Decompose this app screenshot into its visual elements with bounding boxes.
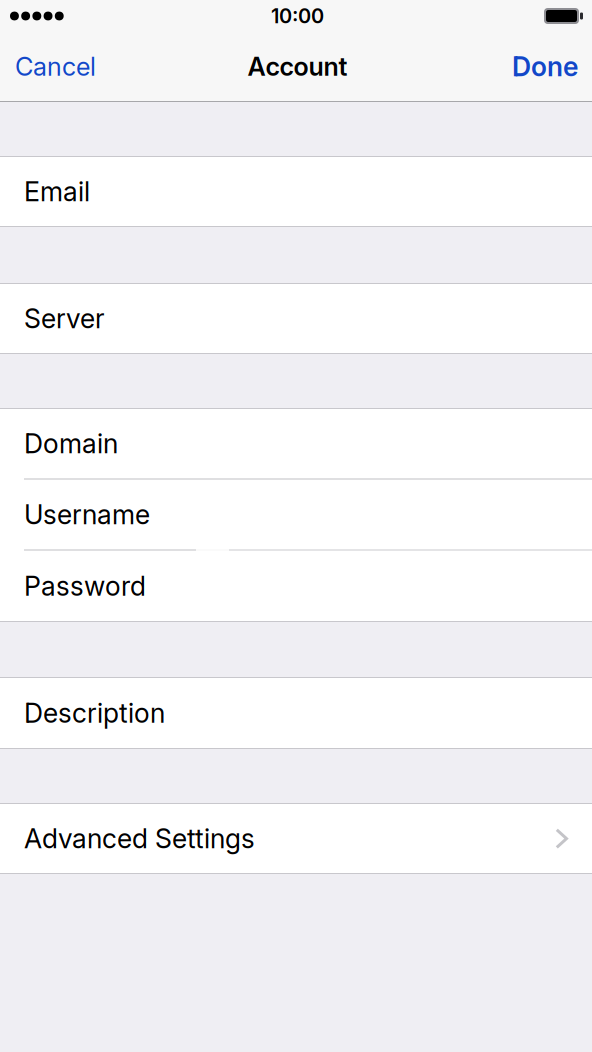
button[interactable]: Done	[500, 32, 592, 101]
staticText: Username	[24, 498, 150, 531]
staticText: Password	[24, 570, 146, 602]
staticText: Domain	[24, 427, 118, 460]
staticText: 10:00	[271, 4, 324, 28]
staticText: Account	[247, 51, 347, 82]
button[interactable]: Advanced Settings	[0, 804, 592, 873]
staticText: Cancel	[15, 51, 96, 82]
button[interactable]: Email	[0, 157, 592, 226]
staticText: Server	[24, 302, 105, 335]
staticText: Advanced Settings	[24, 822, 255, 855]
button[interactable]: Username	[0, 480, 592, 549]
staticText: Description	[24, 697, 165, 729]
button[interactable]: Cancel	[0, 32, 108, 101]
button[interactable]: Password	[0, 551, 592, 621]
staticText: Email	[24, 175, 90, 208]
staticText: Done	[512, 50, 578, 83]
button[interactable]: Server	[0, 284, 592, 353]
button[interactable]: Description	[0, 678, 592, 748]
button[interactable]: Domain	[0, 409, 592, 478]
